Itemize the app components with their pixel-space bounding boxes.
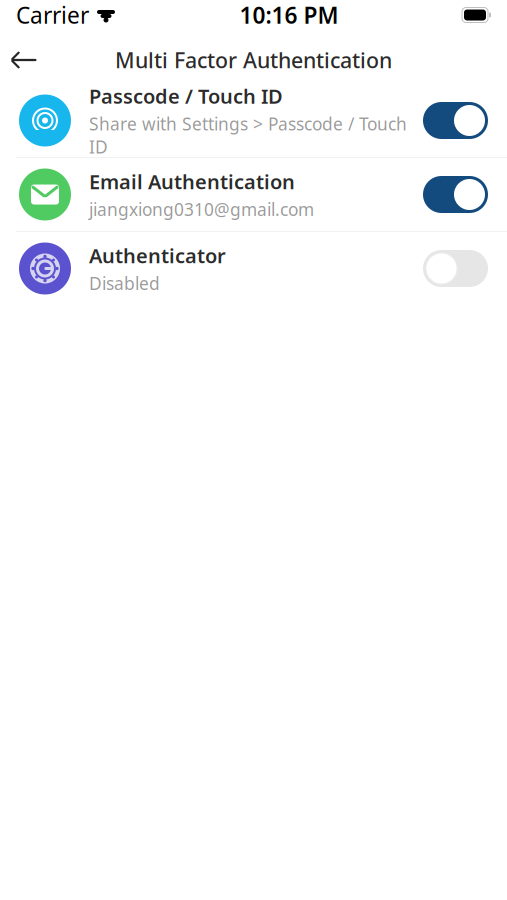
staticText: Share with Settings > Passcode / Touch I…: [89, 112, 407, 158]
button[interactable]: Passcode / Touch ID: [0, 84, 507, 157]
staticText: Multi Factor Authentication: [115, 46, 392, 74]
staticText: Authenticator: [89, 242, 226, 269]
staticText: 10:16 PM: [239, 0, 338, 30]
button[interactable]: Authenticator: [0, 232, 507, 305]
staticText: Disabled: [89, 272, 160, 295]
staticText: Passcode / Touch ID: [89, 83, 283, 109]
button[interactable]: Back: [0, 38, 48, 82]
staticText: Email Authentication: [89, 168, 295, 195]
button[interactable]: Email Authentication: [0, 158, 507, 231]
staticText: Carrier: [16, 0, 89, 30]
staticText: jiangxiong0310@gmail.com: [89, 198, 314, 221]
